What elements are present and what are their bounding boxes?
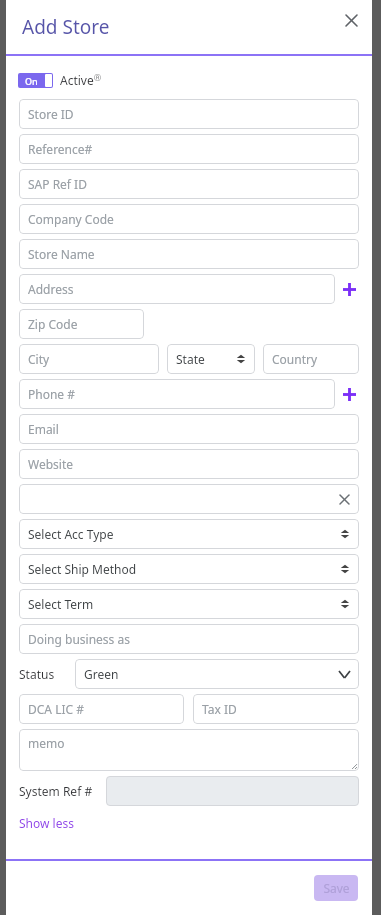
staticText: Ⓡ [94, 73, 101, 82]
button[interactable]: Store ID [19, 99, 359, 129]
button[interactable]: Reference# [19, 134, 359, 164]
button[interactable]: Clear [19, 484, 359, 514]
staticText: City [28, 351, 50, 367]
staticText: Address [28, 281, 74, 297]
staticText: SAP Ref ID [28, 176, 87, 192]
button[interactable]: DCA LIC # [19, 694, 184, 724]
staticText: Select Acc Type [28, 526, 114, 542]
button[interactable]: Green [75, 659, 359, 689]
button[interactable]: Select Ship Method [19, 554, 359, 584]
staticText: Company Code [28, 211, 114, 227]
button[interactable]: Add [339, 279, 359, 299]
staticText: State [176, 351, 205, 367]
staticText: Select Term [28, 596, 94, 612]
staticText: Phone # [28, 386, 75, 402]
staticText: Save [323, 880, 350, 896]
button[interactable]: City [19, 344, 159, 374]
staticText: Active [60, 72, 94, 88]
button[interactable]: Phone # [19, 379, 335, 409]
staticText: Store ID [28, 106, 74, 122]
button[interactable]: SAP Ref ID [19, 169, 359, 199]
staticText: Select Ship Method [28, 561, 137, 577]
staticText: Show less [19, 815, 74, 831]
button[interactable]: Doing business as [19, 624, 359, 654]
staticText: On [25, 75, 38, 87]
staticText: System Ref # [19, 783, 93, 799]
staticText: Website [28, 456, 74, 472]
button[interactable]: Zip Code [19, 309, 144, 339]
staticText: Email [28, 421, 59, 437]
staticText: Doing business as [28, 631, 130, 647]
button[interactable]: Tax ID [193, 694, 359, 724]
button[interactable]: Country [263, 344, 359, 374]
staticText: Reference# [28, 141, 93, 157]
button[interactable]: Clear [335, 490, 354, 509]
button[interactable]: Close [341, 10, 362, 31]
button[interactable]: memo [19, 729, 359, 771]
button[interactable]: Add [339, 384, 359, 404]
staticText: Status [19, 666, 55, 682]
button[interactable] [106, 776, 359, 806]
button[interactable]: Show less [19, 815, 74, 831]
button[interactable]: Website [19, 449, 359, 479]
button[interactable]: Select Term [19, 589, 359, 619]
button[interactable]: State [167, 344, 255, 374]
staticText: Country [272, 351, 318, 367]
button[interactable]: Email [19, 414, 359, 444]
staticText: Add Store [22, 14, 110, 40]
staticText: DCA LIC # [28, 701, 84, 717]
button[interactable]: Save [314, 875, 358, 901]
button[interactable]: Select Acc Type [19, 519, 359, 549]
staticText: Zip Code [28, 316, 78, 332]
button[interactable]: On [18, 73, 53, 88]
button[interactable]: Company Code [19, 204, 359, 234]
staticText: Tax ID [202, 701, 237, 717]
button[interactable]: Store Name [19, 239, 359, 269]
staticText: Store Name [28, 246, 95, 262]
staticText: memo [28, 735, 65, 751]
button[interactable]: Address [19, 274, 335, 304]
staticText: Green [84, 666, 119, 682]
